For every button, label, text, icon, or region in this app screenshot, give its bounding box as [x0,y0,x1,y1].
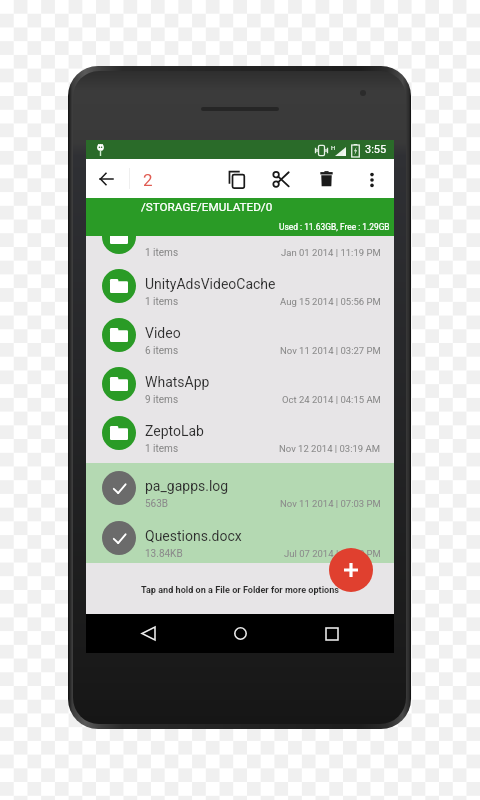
staticText: 13.84KB [145,548,183,560]
staticText: Jan 01 2014 | 11:19 PM [281,247,381,258]
staticText: pa_gapps.log [145,478,229,494]
button[interactable]: Back [86,159,127,198]
staticText: 1 items [145,296,179,308]
staticText: UnityAdsVideoCache [145,276,276,292]
button[interactable]: Home [210,614,270,653]
staticText: 1 items [145,443,179,455]
staticText: Nov 11 2014 | 07:03 PM [280,498,381,509]
staticText: 1 items [145,247,179,259]
staticText: 3:55 [365,143,387,156]
staticText: Jul 07 2014 | 03:12 PM [284,548,381,559]
staticText: 6 items [145,345,179,357]
staticText: H [331,144,336,151]
button[interactable]: Recents [302,614,362,653]
button[interactable]: UnityAdsVideoCache [86,261,394,310]
staticText: ZeptoLab [145,423,204,439]
staticText: /STORAGE/EMULATED/0 [141,200,273,214]
staticText: Video [145,325,181,341]
button[interactable]: Questions.docx [86,513,394,563]
button[interactable]: ZeptoLab [86,408,394,457]
button[interactable]: pa_gapps.log [86,463,394,513]
staticText: Tap and hold on a File or Folder for mor… [141,585,339,596]
staticText: WhatsApp [145,374,210,390]
button[interactable]: 1 items [86,236,394,261]
staticText: Nov 12 2014 | 03:19 AM [279,443,381,454]
staticText: Used : 11.63GB, Free : 1.29GB [279,222,390,232]
staticText: 9 items [145,394,179,406]
button[interactable]: More options [349,159,394,198]
button[interactable]: Cut [259,159,304,198]
button[interactable]: Back [118,614,178,653]
button[interactable]: Video [86,310,394,359]
staticText: 563B [145,498,169,510]
button[interactable]: Copy [214,159,259,198]
staticText: Oct 24 2014 | 04:15 AM [282,394,381,405]
button[interactable]: Delete [304,159,349,198]
button[interactable]: WhatsApp [86,359,394,408]
staticText: Nov 11 2014 | 03:27 PM [280,345,381,356]
staticText: Questions.docx [145,528,242,544]
staticText: 2 [143,170,153,190]
button[interactable]: Add [329,548,373,592]
staticText: Aug 15 2014 | 05:56 PM [280,296,381,307]
